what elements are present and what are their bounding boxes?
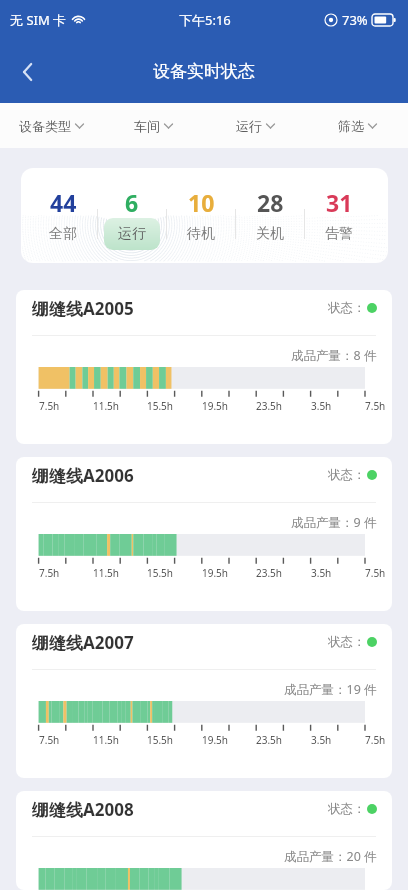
staticText: 筛选 bbox=[338, 118, 364, 134]
button[interactable]: 设备类型 bbox=[0, 103, 102, 148]
staticText: 15.5h bbox=[147, 399, 174, 413]
staticText: 无 SIM 卡 bbox=[10, 11, 67, 29]
staticText: 19.5h bbox=[202, 733, 229, 747]
button[interactable]: 绷缝线A2008 bbox=[16, 791, 392, 890]
staticText: 绷缝线A2007 bbox=[32, 631, 134, 654]
staticText: 23.5h bbox=[256, 566, 283, 580]
button[interactable]: 筛选 bbox=[306, 103, 408, 148]
staticText: 3.5h bbox=[311, 566, 332, 580]
staticText: 状态： bbox=[328, 801, 366, 817]
staticText: 3.5h bbox=[311, 733, 332, 747]
staticText: 7.5h bbox=[365, 399, 386, 413]
staticText: 23.5h bbox=[256, 399, 283, 413]
staticText: 44 bbox=[50, 187, 77, 218]
staticText: 下午5:16 bbox=[179, 11, 231, 29]
button[interactable]: 6 bbox=[98, 168, 166, 263]
staticText: 31 bbox=[326, 187, 353, 218]
staticText: 11.5h bbox=[93, 399, 120, 413]
button[interactable]: 10 bbox=[167, 168, 235, 263]
button[interactable]: 28 bbox=[236, 168, 304, 263]
button[interactable]: 车间 bbox=[102, 103, 204, 148]
staticText: 10 bbox=[188, 187, 215, 218]
staticText: 待机 bbox=[187, 225, 215, 243]
staticText: 设备实时状态 bbox=[153, 61, 255, 82]
staticText: 7.5h bbox=[365, 733, 386, 747]
button[interactable]: 运行 bbox=[204, 103, 306, 148]
staticText: 成品产量：19 件 bbox=[284, 681, 377, 698]
staticText: 设备类型 bbox=[19, 118, 71, 134]
staticText: 19.5h bbox=[202, 399, 229, 413]
staticText: 全部 bbox=[49, 225, 77, 243]
staticText: 关机 bbox=[256, 225, 284, 243]
button[interactable]: 绷缝线A2006 bbox=[16, 457, 392, 611]
staticText: 7.5h bbox=[39, 399, 60, 413]
staticText: 告警 bbox=[325, 225, 353, 243]
staticText: 7.5h bbox=[365, 566, 386, 580]
staticText: 11.5h bbox=[93, 733, 120, 747]
staticText: 状态： bbox=[328, 634, 366, 650]
staticText: 15.5h bbox=[147, 733, 174, 747]
staticText: 73% bbox=[342, 11, 368, 29]
staticText: 运行 bbox=[236, 118, 262, 134]
staticText: 7.5h bbox=[39, 733, 60, 747]
staticText: 成品产量：20 件 bbox=[284, 848, 377, 865]
staticText: 运行 bbox=[118, 225, 146, 243]
staticText: 15.5h bbox=[147, 566, 174, 580]
button[interactable]: 31 bbox=[305, 168, 373, 263]
button[interactable]: 绷缝线A2007 bbox=[16, 624, 392, 778]
staticText: 状态： bbox=[328, 467, 366, 483]
staticText: 状态： bbox=[328, 300, 366, 316]
staticText: 19.5h bbox=[202, 566, 229, 580]
staticText: 绷缝线A2006 bbox=[32, 464, 134, 487]
staticText: 28 bbox=[257, 187, 284, 218]
staticText: 7.5h bbox=[39, 566, 60, 580]
staticText: 6 bbox=[125, 187, 139, 218]
staticText: 3.5h bbox=[311, 399, 332, 413]
staticText: 绷缝线A2005 bbox=[32, 297, 134, 320]
staticText: 绷缝线A2008 bbox=[32, 798, 134, 821]
staticText: 成品产量：8 件 bbox=[291, 347, 377, 364]
staticText: 成品产量：9 件 bbox=[291, 514, 377, 531]
staticText: 23.5h bbox=[256, 733, 283, 747]
staticText: 车间 bbox=[134, 118, 160, 134]
button[interactable]: 绷缝线A2005 bbox=[16, 290, 392, 444]
staticText: 11.5h bbox=[93, 566, 120, 580]
button[interactable]: 44 bbox=[29, 168, 97, 263]
button[interactable]: Back bbox=[6, 50, 50, 94]
